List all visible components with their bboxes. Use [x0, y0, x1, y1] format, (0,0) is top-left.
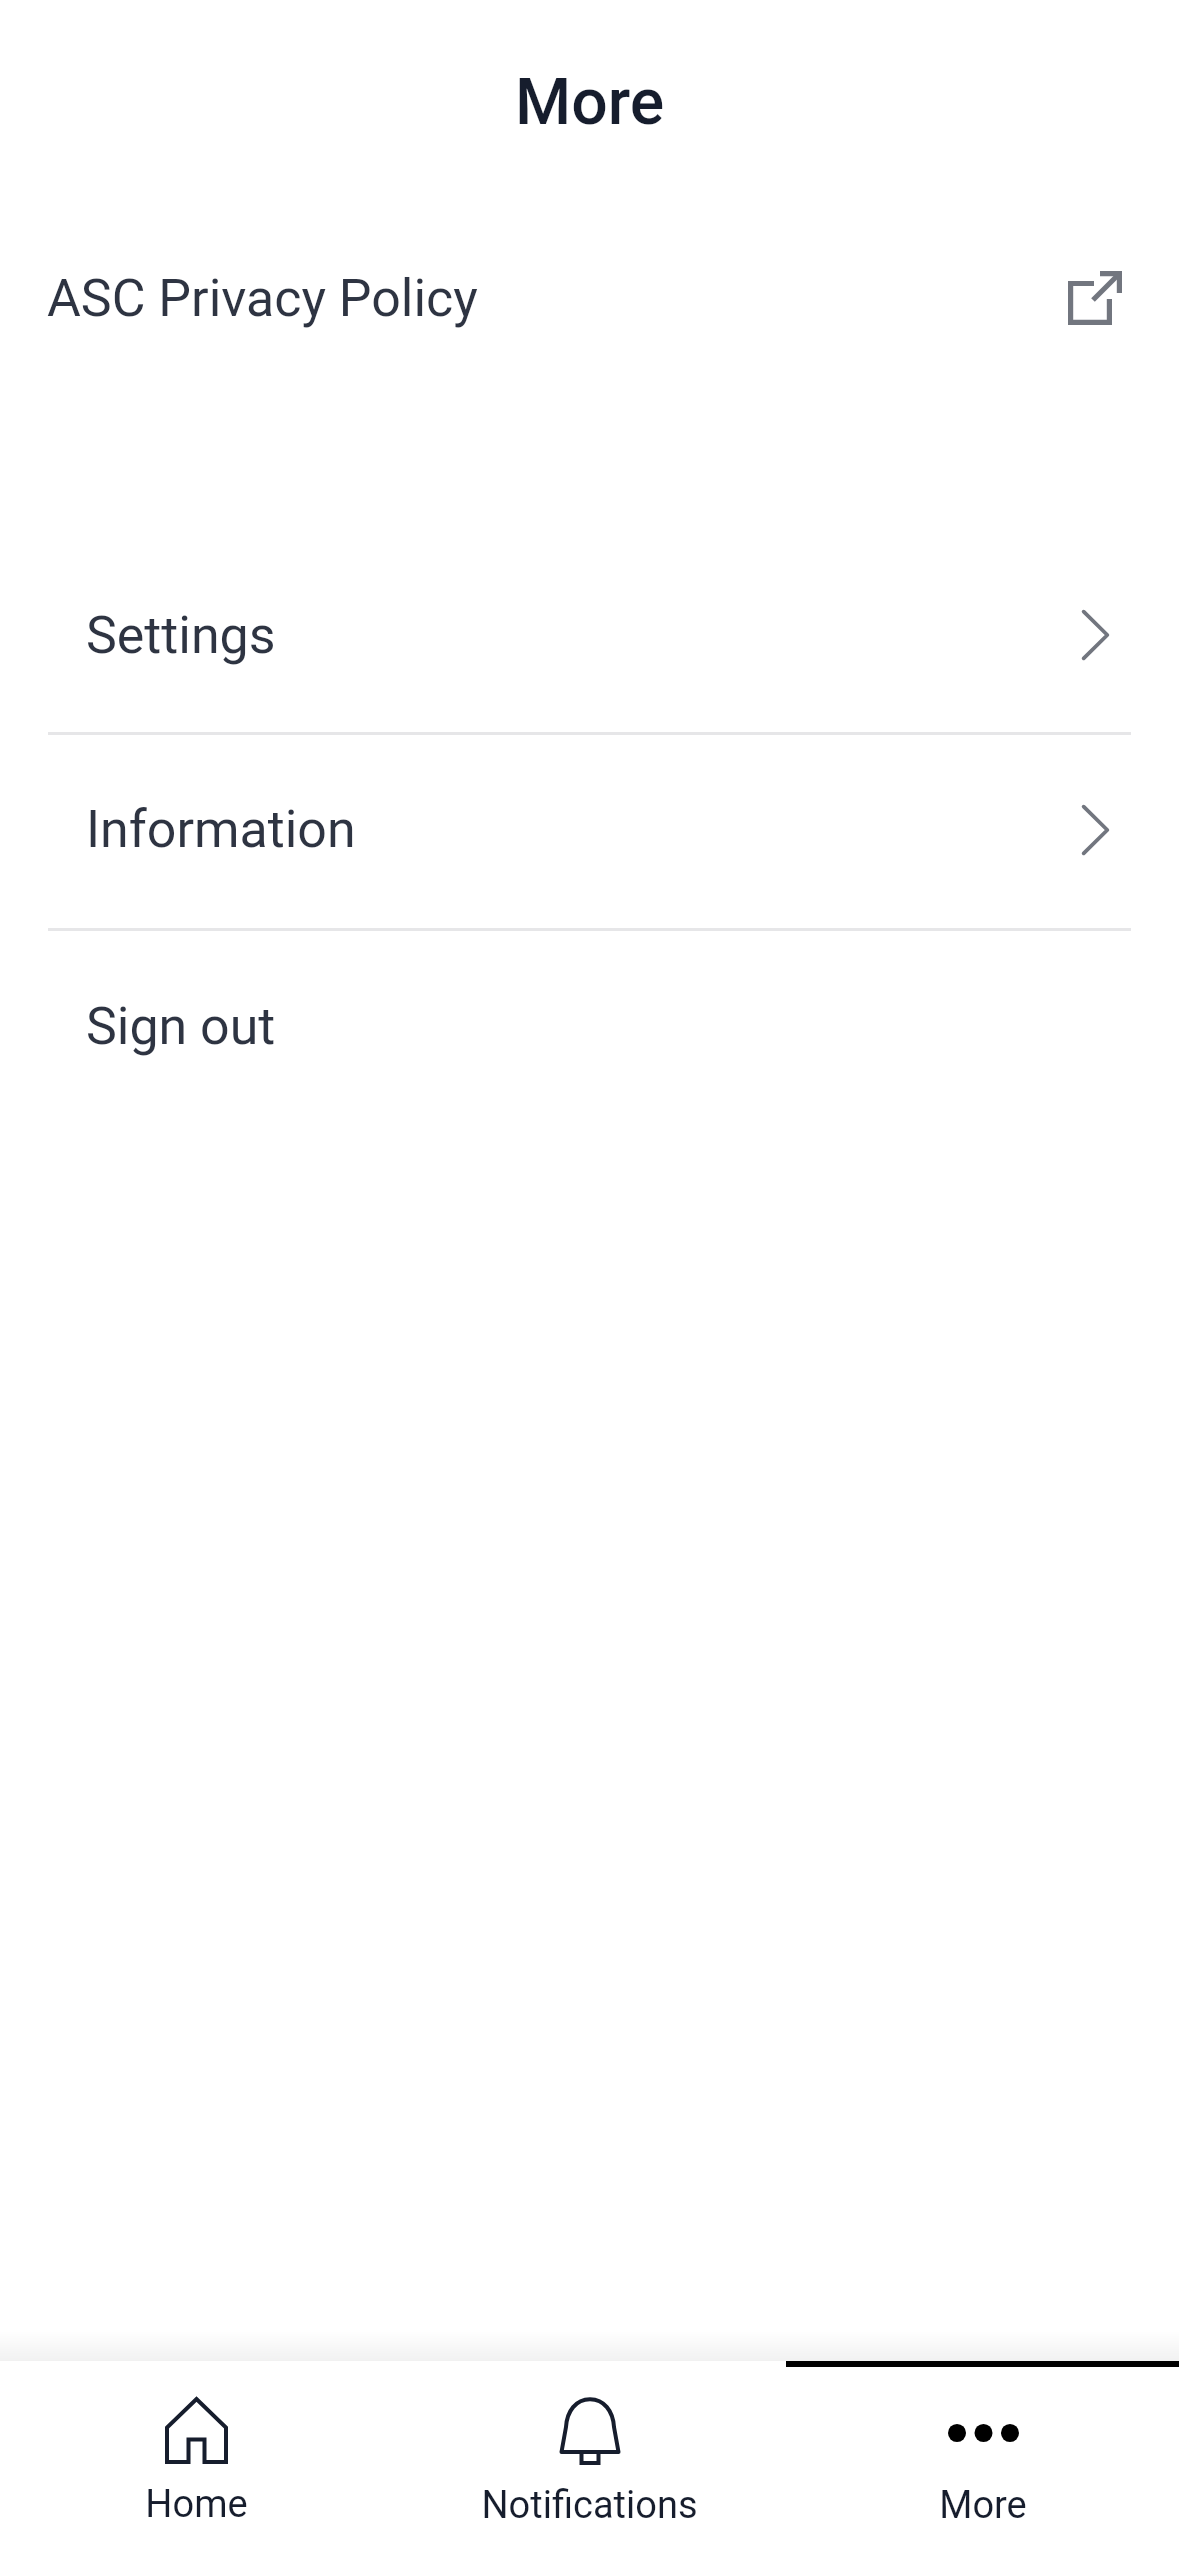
button[interactable]: More [786, 2361, 1179, 2553]
button[interactable]: Home [0, 2361, 393, 2553]
staticText: Notifications [481, 2483, 698, 2528]
button[interactable]: Sign out [0, 931, 1179, 1121]
button[interactable]: Notifications [393, 2361, 786, 2553]
button[interactable]: Information [0, 735, 1179, 928]
staticText: ASC Privacy Policy [47, 268, 478, 329]
staticText: Home [145, 2482, 248, 2527]
staticText: More [515, 64, 665, 139]
staticText: Settings [86, 605, 276, 666]
staticText: More [939, 2483, 1027, 2528]
other: Open ASC Privacy Policy [1068, 271, 1122, 325]
button[interactable]: Settings [0, 538, 1179, 732]
staticText: Information [86, 799, 356, 860]
button[interactable]: ASC Privacy Policy [0, 203, 1179, 393]
staticText: Sign out [86, 996, 276, 1057]
